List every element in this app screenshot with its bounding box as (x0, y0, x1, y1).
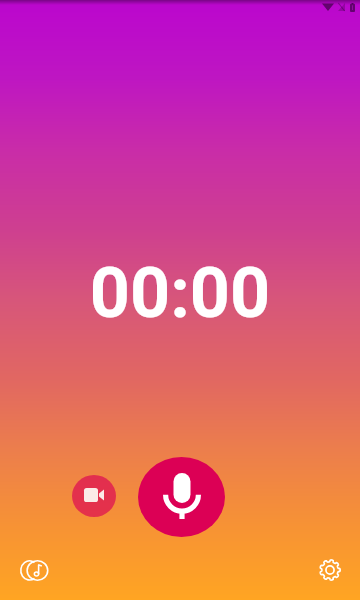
button[interactable]: Record video (72, 475, 116, 517)
button[interactable]: Recordings library (12, 548, 56, 592)
button[interactable]: Settings (308, 548, 352, 592)
staticText: 00:00 (0, 252, 360, 334)
button[interactable]: Record audio (138, 457, 225, 537)
